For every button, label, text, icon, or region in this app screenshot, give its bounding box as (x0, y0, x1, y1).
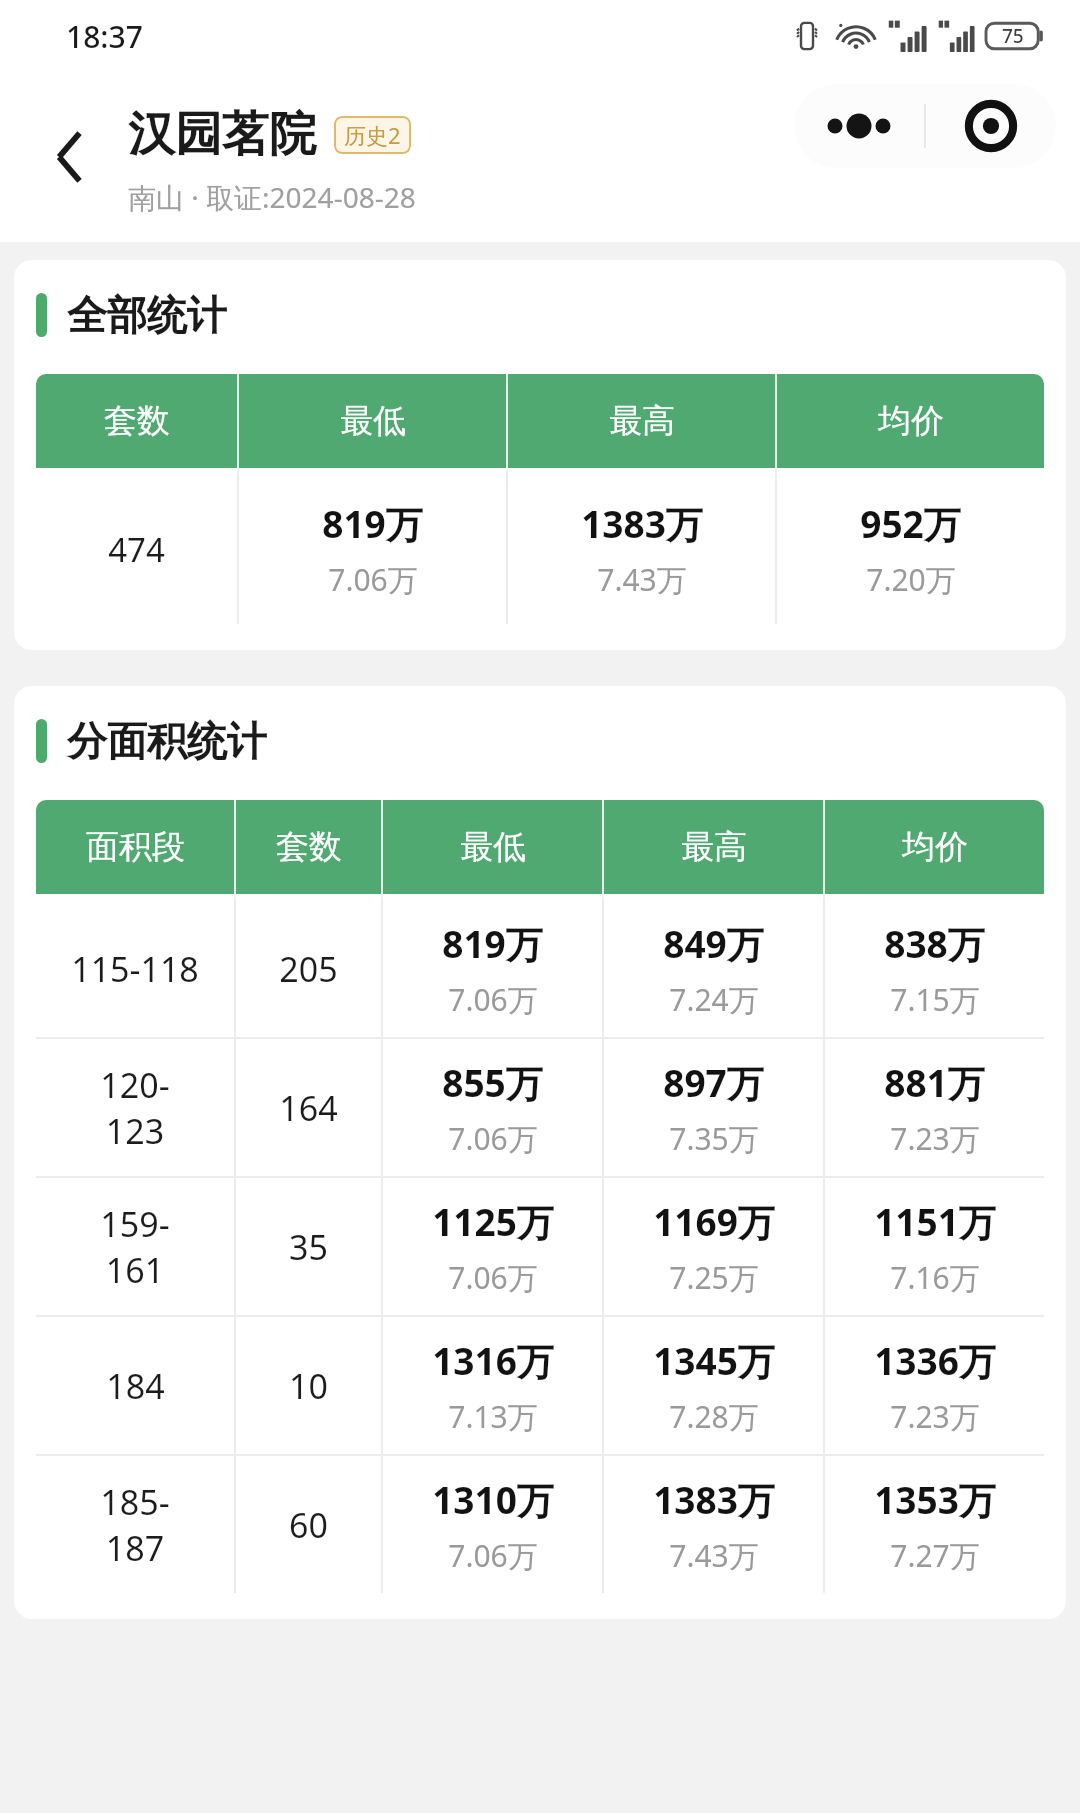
button[interactable]: 184 (36, 1317, 1044, 1454)
staticText: 7.35万 (669, 1118, 759, 1159)
button[interactable]: 历史2 (334, 116, 411, 154)
staticText: 10 (289, 1363, 328, 1409)
staticText: 819万 (442, 918, 543, 969)
staticText: 474 (108, 527, 165, 572)
staticText: 7.06万 (328, 559, 418, 600)
staticText: 205 (279, 946, 338, 992)
button[interactable]: 159- 161 (36, 1178, 1044, 1315)
staticText: 115-118 (71, 946, 199, 992)
staticText: 159- 161 (100, 1201, 170, 1293)
button[interactable]: More options (794, 84, 924, 168)
button[interactable]: 120- 123 (36, 1039, 1044, 1176)
staticText: 7.16万 (890, 1257, 980, 1298)
staticText: 7.15万 (890, 979, 980, 1020)
staticText: 897万 (663, 1057, 764, 1108)
staticText: 164 (279, 1085, 338, 1131)
staticText: 849万 (663, 918, 764, 969)
staticText: 均价 (902, 826, 968, 868)
staticText: 819万 (322, 498, 423, 549)
staticText: 1310万 (432, 1474, 554, 1525)
staticText: 120- 123 (100, 1062, 170, 1154)
staticText: 881万 (884, 1057, 985, 1108)
staticText: 7.06万 (448, 1118, 538, 1159)
staticText: 套数 (104, 400, 170, 442)
staticText: 7.28万 (669, 1396, 759, 1437)
staticText: 7.13万 (448, 1396, 538, 1437)
staticText: 1383万 (581, 498, 703, 549)
staticText: 1125万 (432, 1196, 554, 1247)
staticText: 最低 (340, 400, 406, 442)
staticText: 7.27万 (890, 1535, 980, 1576)
staticText: 1345万 (653, 1335, 775, 1386)
button[interactable]: 115-118 (36, 900, 1044, 1037)
staticText: 1169万 (653, 1196, 775, 1247)
staticText: 838万 (884, 918, 985, 969)
staticText: 历史2 (344, 120, 401, 150)
staticText: 60 (289, 1502, 328, 1548)
staticText: 7.43万 (669, 1535, 759, 1576)
button[interactable]: Back (30, 117, 110, 197)
staticText: 952万 (860, 498, 961, 549)
staticText: 7.06万 (448, 1257, 538, 1298)
staticText: 1336万 (874, 1335, 996, 1386)
staticText: 7.24万 (669, 979, 759, 1020)
staticText: 7.23万 (890, 1118, 980, 1159)
staticText: 7.06万 (448, 1535, 538, 1576)
staticText: 184 (106, 1363, 165, 1409)
staticText: 7.06万 (448, 979, 538, 1020)
staticText: 面积段 (86, 826, 185, 868)
staticText: 75 (1002, 23, 1024, 49)
staticText: 855万 (442, 1057, 543, 1108)
staticText: 全部统计 (67, 290, 227, 340)
button[interactable]: 185- 187 (36, 1456, 1044, 1593)
staticText: 南山 · 取证:2024-08-28 (128, 178, 416, 216)
staticText: 1383万 (653, 1474, 775, 1525)
staticText: 18:37 (66, 16, 143, 57)
staticText: 最高 (681, 826, 747, 868)
staticText: 1316万 (432, 1335, 554, 1386)
button[interactable]: Target (926, 84, 1056, 168)
staticText: 均价 (878, 400, 944, 442)
staticText: 185- 187 (100, 1479, 170, 1571)
staticText: 35 (289, 1224, 328, 1270)
staticText: 汉园茗院 (128, 105, 316, 164)
staticText: 最高 (609, 400, 675, 442)
staticText: 1353万 (874, 1474, 996, 1525)
staticText: 7.25万 (669, 1257, 759, 1298)
staticText: 7.23万 (890, 1396, 980, 1437)
staticText: 分面积统计 (67, 716, 267, 766)
staticText: 1151万 (874, 1196, 996, 1247)
staticText: 最低 (460, 826, 526, 868)
staticText: 套数 (276, 826, 342, 868)
staticText: 7.20万 (866, 559, 956, 600)
staticText: 7.43万 (597, 559, 687, 600)
